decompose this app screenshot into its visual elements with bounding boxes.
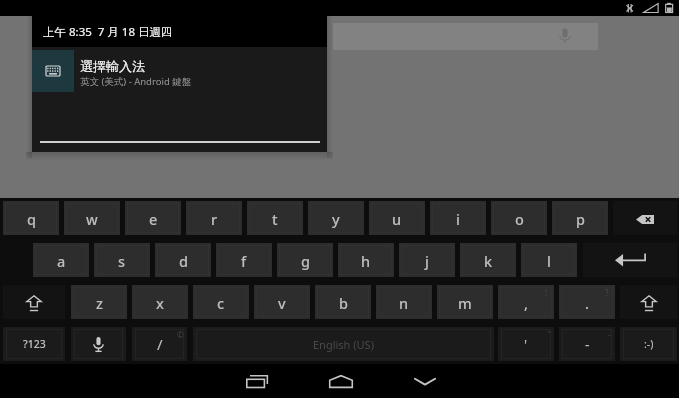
staticText: English (US) xyxy=(313,337,374,352)
staticText: :-) xyxy=(644,337,654,351)
button[interactable]: Shift xyxy=(3,285,65,319)
staticText: a xyxy=(57,251,66,271)
staticText: t xyxy=(272,209,278,229)
staticText: p xyxy=(576,209,585,229)
button[interactable]: . xyxy=(559,285,615,319)
button[interactable]: h xyxy=(338,243,394,277)
button[interactable]: Shift xyxy=(620,285,677,319)
staticText: ? xyxy=(605,287,609,298)
staticText: e xyxy=(149,209,158,229)
button[interactable]: k xyxy=(460,243,516,277)
button[interactable]: Enter xyxy=(583,243,677,277)
button[interactable]: i xyxy=(430,201,486,235)
staticText: c xyxy=(217,293,225,313)
button[interactable]: , xyxy=(498,285,554,319)
staticText: , xyxy=(524,293,528,313)
button[interactable]: Recents xyxy=(215,364,299,398)
staticText: u xyxy=(392,209,402,229)
staticText: " xyxy=(548,329,551,339)
button[interactable]: o xyxy=(491,201,547,235)
button[interactable]: Hide keyboard xyxy=(383,364,467,398)
staticText: g xyxy=(301,251,310,271)
button[interactable]: e xyxy=(125,201,181,235)
staticText: y xyxy=(332,209,340,229)
staticText: _ xyxy=(608,328,612,338)
staticText: k xyxy=(484,251,493,271)
button[interactable]: q xyxy=(3,201,59,235)
button[interactable]: g xyxy=(277,243,333,277)
button[interactable]: f xyxy=(216,243,272,277)
staticText: / xyxy=(157,334,163,354)
staticText: i xyxy=(456,209,460,229)
staticText: z xyxy=(96,293,103,313)
button[interactable]: Voice input xyxy=(71,327,126,361)
staticText: s xyxy=(118,251,126,271)
button[interactable]: b xyxy=(315,285,371,319)
button[interactable]: r xyxy=(186,201,242,235)
staticText: l xyxy=(547,251,551,271)
button[interactable]: n xyxy=(376,285,432,319)
staticText: f xyxy=(241,251,247,271)
staticText: d xyxy=(179,251,188,271)
staticText: © xyxy=(177,329,184,340)
button[interactable]: s xyxy=(94,243,150,277)
staticText: ' xyxy=(524,335,528,354)
button[interactable]: c xyxy=(193,285,249,319)
button[interactable]: v xyxy=(254,285,310,319)
button[interactable]: Space xyxy=(193,327,494,361)
staticText: 上午 8:35 7 月 18 日週四 xyxy=(43,24,173,40)
staticText: r xyxy=(211,209,218,229)
button[interactable]: Home xyxy=(299,364,383,398)
button[interactable]: x xyxy=(132,285,188,319)
button[interactable]: w xyxy=(64,201,120,235)
button[interactable]: Symbols xyxy=(3,327,65,361)
button[interactable]: d xyxy=(155,243,211,277)
button[interactable]: l xyxy=(521,243,577,277)
button[interactable]: m xyxy=(437,285,493,319)
staticText: w xyxy=(86,209,98,229)
staticText: m xyxy=(458,293,472,313)
button[interactable]: j xyxy=(399,243,455,277)
staticText: o xyxy=(515,209,524,229)
button[interactable]: a xyxy=(33,243,89,277)
button[interactable]: :-) xyxy=(620,327,677,361)
staticText: ! xyxy=(545,287,548,298)
staticText: ?123 xyxy=(23,337,46,351)
button[interactable]: - xyxy=(559,327,615,361)
staticText: x xyxy=(156,293,164,313)
staticText: 選擇輸入法 xyxy=(80,58,145,74)
button[interactable]: z xyxy=(71,285,127,319)
staticText: v xyxy=(278,293,286,313)
staticText: b xyxy=(339,293,348,313)
staticText: h xyxy=(361,251,371,271)
staticText: q xyxy=(27,209,36,229)
button[interactable]: 選擇輸入法 xyxy=(32,47,327,94)
staticText: n xyxy=(399,293,409,313)
button[interactable]: / xyxy=(132,327,187,361)
staticText: - xyxy=(585,335,590,354)
button[interactable]: t xyxy=(247,201,303,235)
staticText: j xyxy=(425,251,429,271)
button[interactable]: y xyxy=(308,201,364,235)
button[interactable]: p xyxy=(552,201,608,235)
button[interactable]: ' xyxy=(498,327,554,361)
button[interactable]: Backspace xyxy=(613,201,677,235)
staticText: . xyxy=(585,293,589,313)
button[interactable]: u xyxy=(369,201,425,235)
staticText: 英文 (美式) - Android 鍵盤 xyxy=(80,75,192,88)
